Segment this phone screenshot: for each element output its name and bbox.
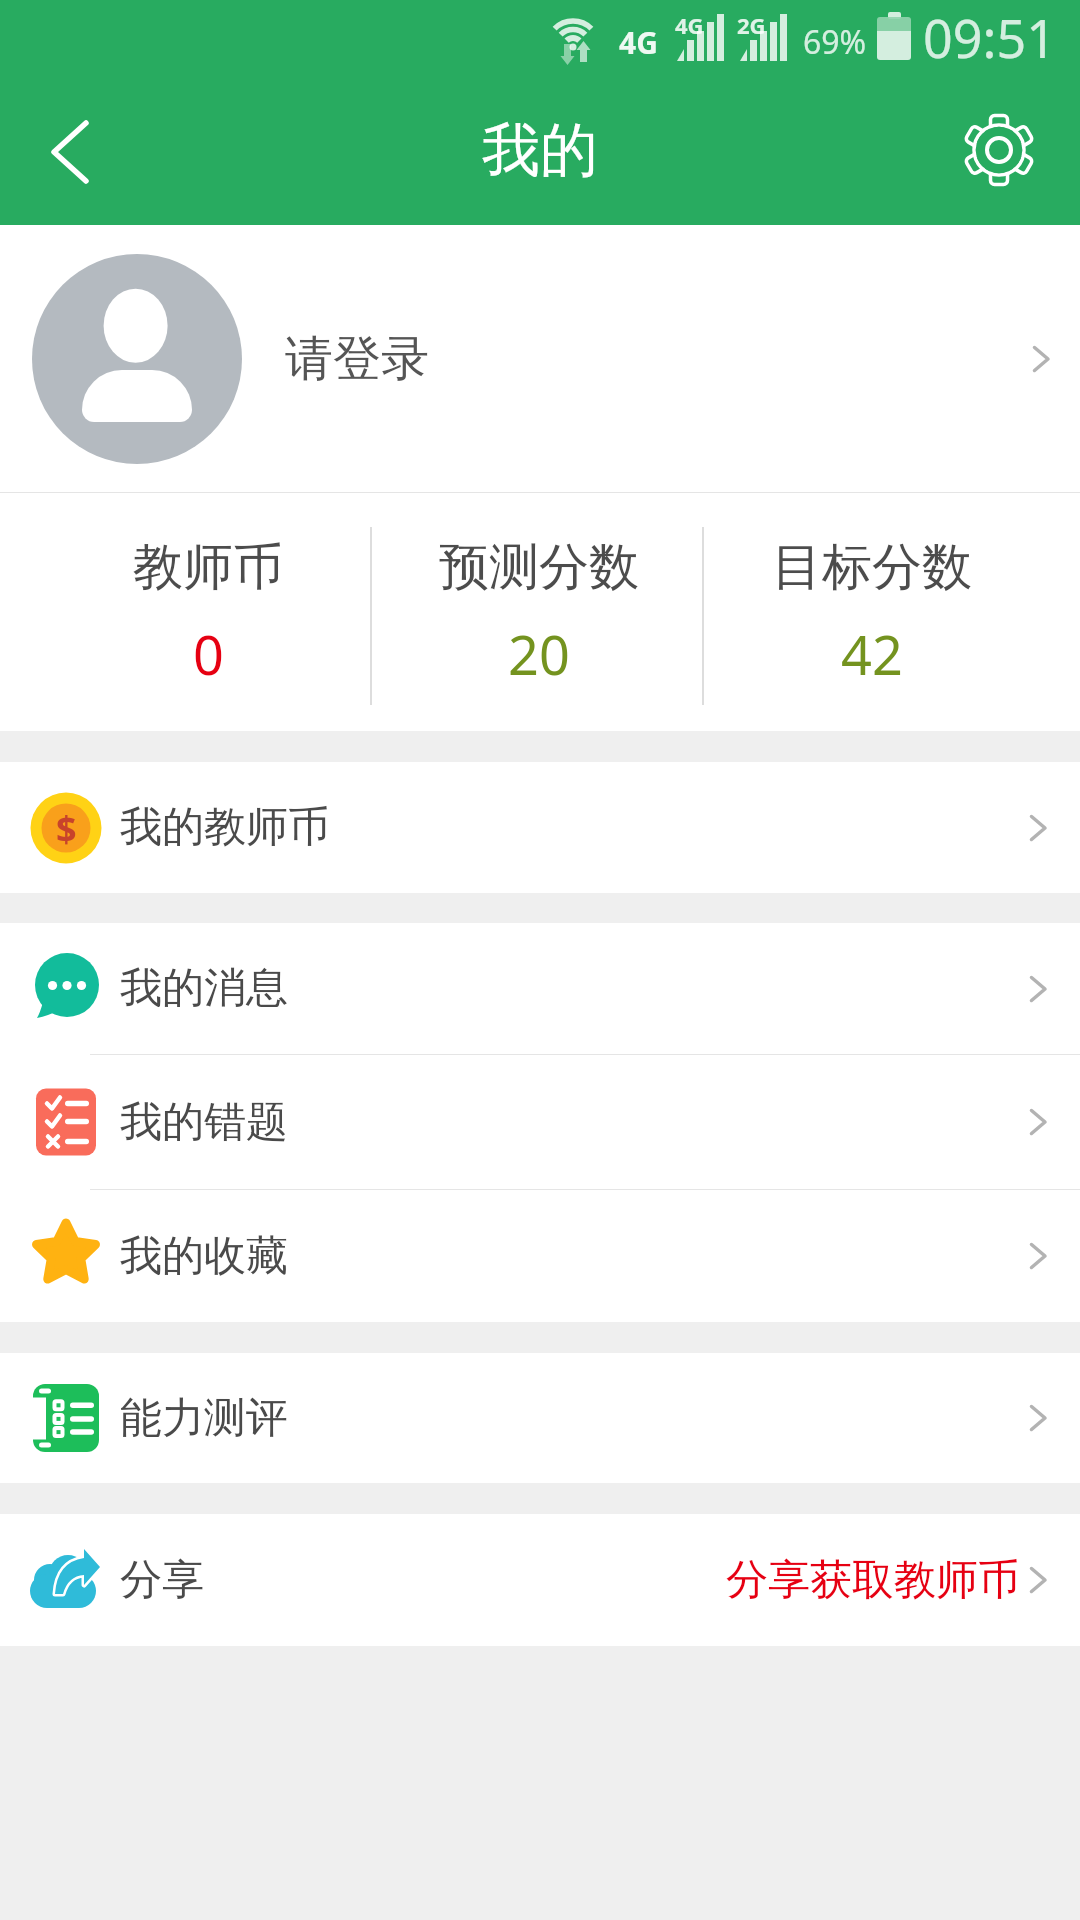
staticText: 4G — [619, 22, 658, 63]
staticText: 69% — [803, 20, 867, 64]
button[interactable]: $ — [0, 762, 1080, 893]
staticText: 我的错题 — [120, 1096, 288, 1149]
staticText: 预测分数 — [439, 536, 639, 599]
staticText: 目标分数 — [772, 536, 972, 599]
staticText: 我的教师币 — [120, 801, 330, 854]
staticText: 教师币 — [133, 536, 283, 599]
staticText: 能力测评 — [120, 1392, 288, 1445]
staticText: 2G — [737, 10, 766, 40]
staticText: 0 — [193, 617, 224, 691]
staticText: $ — [56, 804, 77, 853]
button[interactable]: 分享 — [0, 1514, 1080, 1646]
button[interactable] — [964, 115, 1034, 185]
button[interactable]: 请登录 — [0, 225, 1080, 492]
button[interactable]: 我的消息 — [0, 923, 1080, 1054]
button[interactable] — [40, 120, 100, 180]
button[interactable]: 我的错题 — [0, 1055, 1080, 1189]
staticText: 42 — [841, 617, 903, 691]
staticText: 请登录 — [285, 329, 429, 389]
staticText: 我的收藏 — [120, 1230, 288, 1283]
staticText: 20 — [508, 617, 570, 691]
button[interactable]: 我的收藏 — [0, 1190, 1080, 1322]
staticText: 4G — [675, 10, 704, 40]
button[interactable]: 能力测评 — [0, 1353, 1080, 1483]
staticText: 我的消息 — [120, 962, 288, 1015]
staticText: 分享 — [120, 1554, 204, 1607]
staticText: 我的 — [482, 114, 598, 187]
staticText: 09:51 — [923, 2, 1056, 73]
staticText: 分享获取教师币 — [726, 1554, 1020, 1607]
